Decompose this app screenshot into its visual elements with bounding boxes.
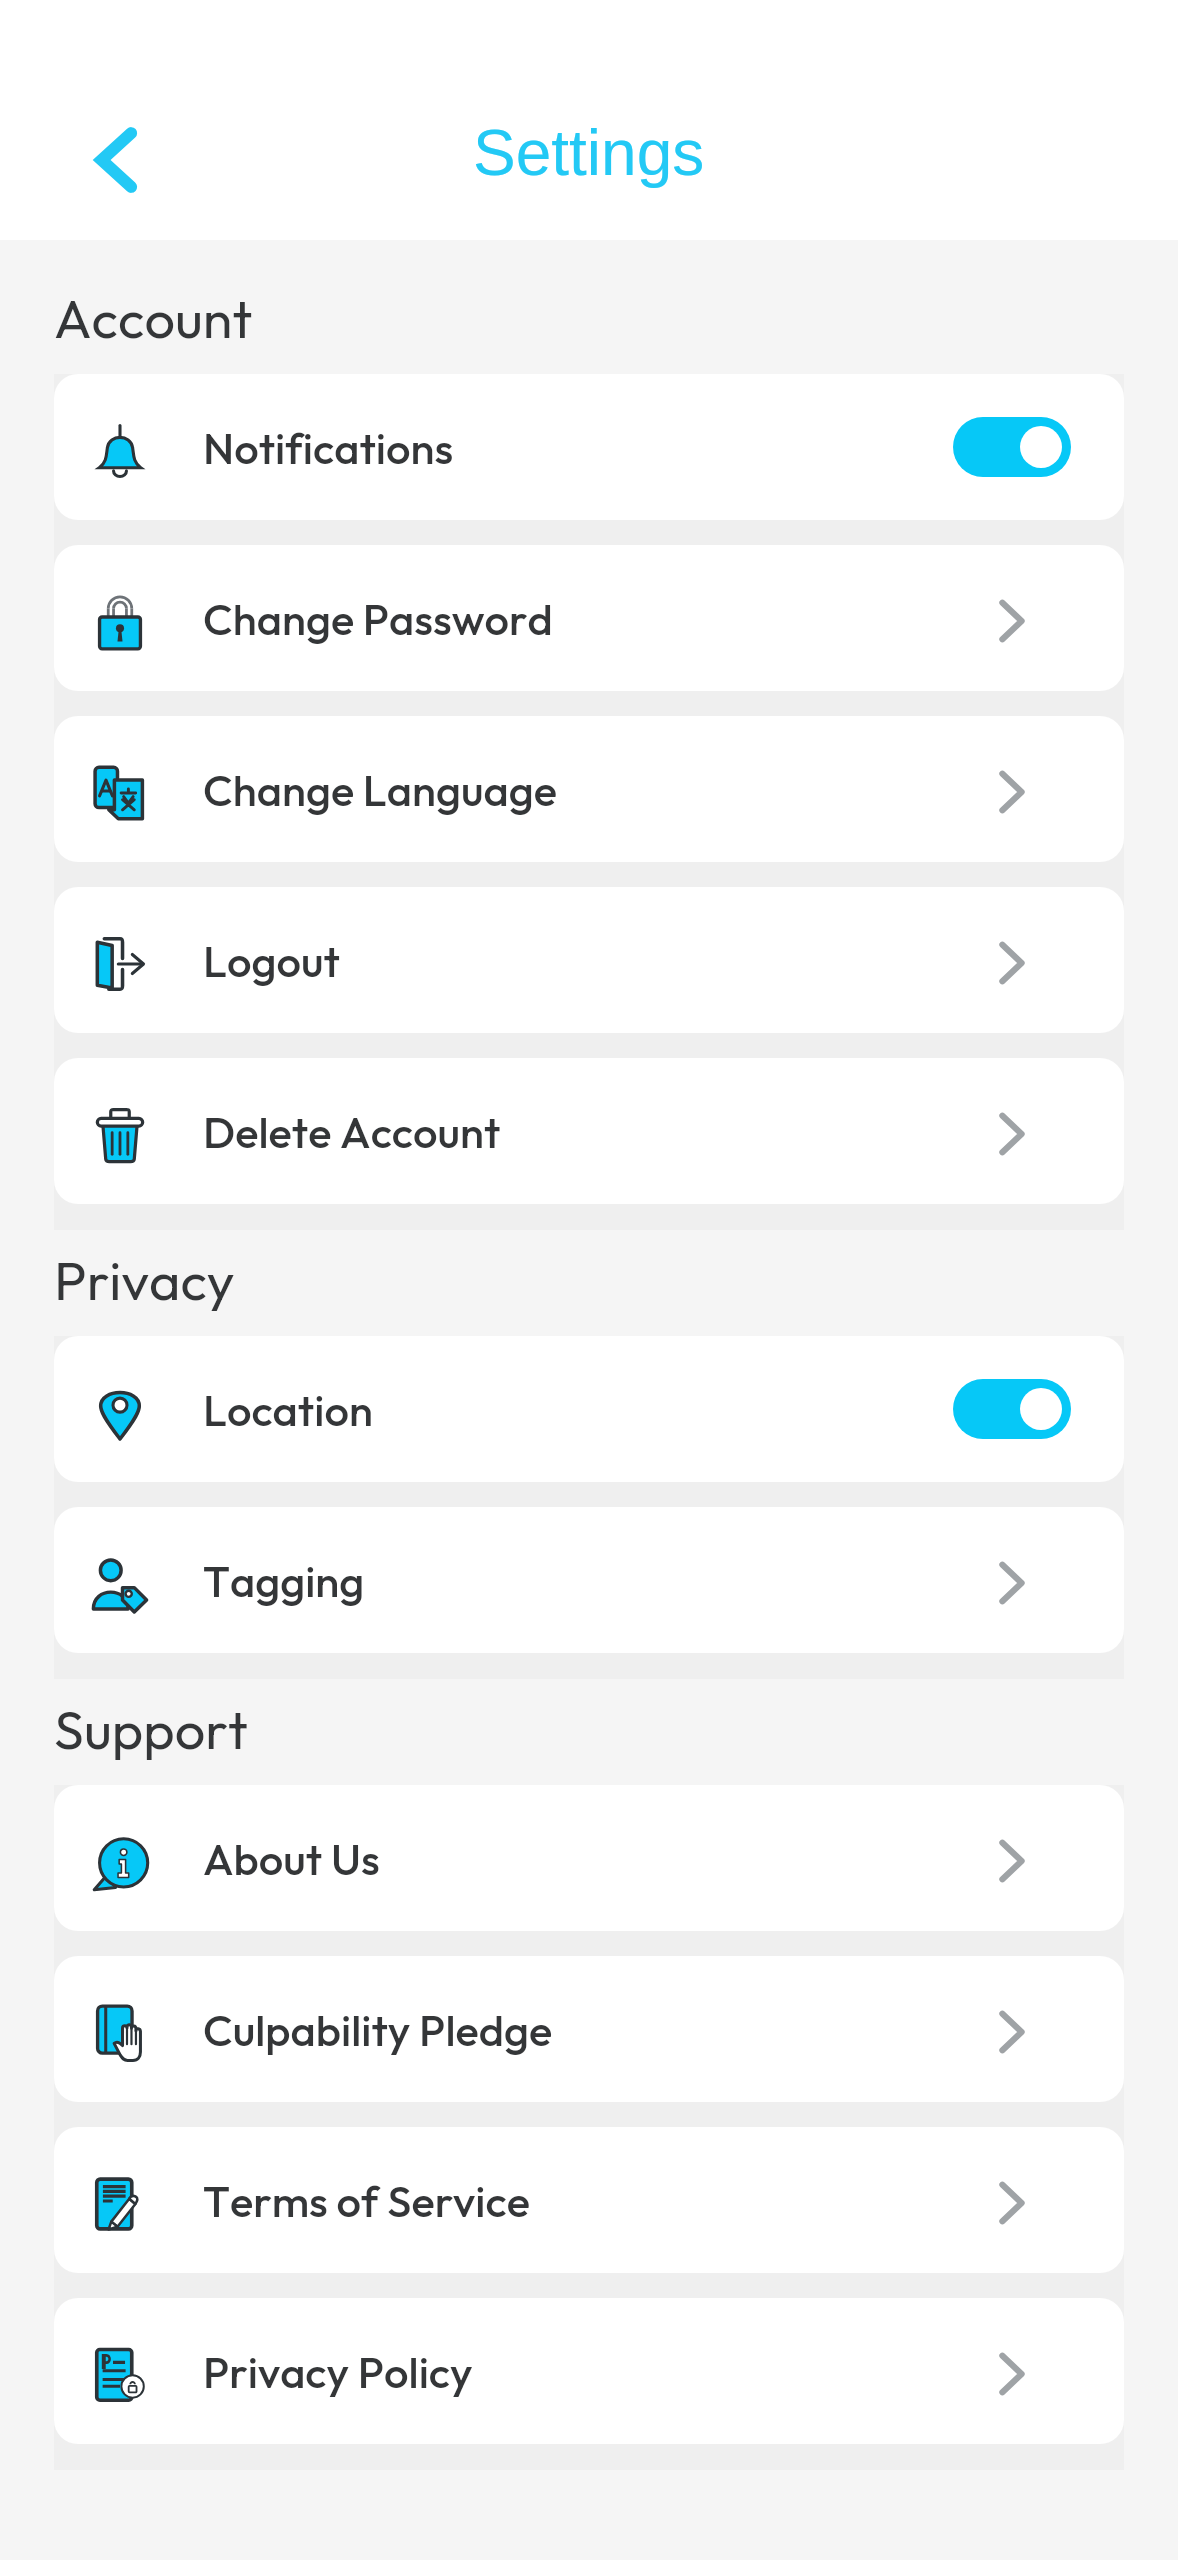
button[interactable]: Tagging — [54, 1507, 1124, 1653]
staticText: Delete Account — [203, 1104, 501, 1159]
button[interactable]: Privacy Policy — [54, 2298, 1124, 2444]
button[interactable]: Toggle Notifications — [953, 417, 1071, 477]
staticText: About Us — [203, 1831, 380, 1886]
staticText: Location — [203, 1382, 373, 1437]
staticText: Privacy — [54, 1246, 235, 1314]
button[interactable]: Toggle Location — [953, 1379, 1071, 1439]
button[interactable]: Delete Account — [54, 1058, 1124, 1204]
staticText: Terms of Service — [203, 2173, 530, 2228]
button[interactable]: Logout — [54, 887, 1124, 1033]
button[interactable]: Change Language — [54, 716, 1124, 862]
staticText: Tagging — [203, 1553, 365, 1608]
staticText: Support — [54, 1695, 248, 1763]
staticText: Notifications — [203, 420, 454, 475]
staticText: Change Password — [203, 591, 553, 646]
button[interactable]: Change Password — [54, 545, 1124, 691]
staticText: Account — [54, 284, 253, 352]
staticText: Logout — [203, 933, 340, 988]
button[interactable]: Notifications — [54, 374, 1124, 520]
button[interactable]: Terms of Service — [54, 2127, 1124, 2273]
staticText: Settings — [473, 117, 705, 189]
staticText: Change Language — [203, 762, 557, 817]
staticText: Privacy Policy — [203, 2344, 473, 2399]
button[interactable]: Back — [66, 110, 166, 210]
button[interactable]: Culpability Pledge — [54, 1956, 1124, 2102]
staticText: Culpability Pledge — [203, 2002, 553, 2057]
button[interactable]: Location — [54, 1336, 1124, 1482]
button[interactable]: About Us — [54, 1785, 1124, 1931]
